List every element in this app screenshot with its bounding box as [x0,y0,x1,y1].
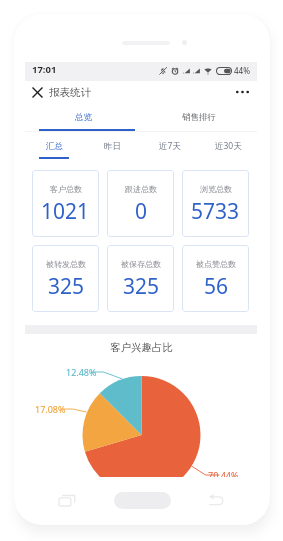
button[interactable]: 销售排行 [141,103,257,132]
button[interactable]: 被点赞总数 [182,245,249,312]
staticText: 17:01 [32,63,57,76]
button[interactable]: Recents [25,484,109,516]
button[interactable]: 客户总数 [32,170,99,237]
staticText: 44% [234,65,250,76]
button[interactable]: Close [25,81,49,103]
staticText: 汇总 [46,141,63,152]
staticText: 被转发总数 [46,259,86,269]
staticText: 1021 [41,197,90,226]
staticText: 70.44% [208,469,239,481]
staticText: 325 [48,272,85,301]
button[interactable]: 浏览总数 [182,170,249,237]
staticText: 0 [135,197,148,226]
staticText: 17.08% [35,403,66,415]
staticText: 近30天 [215,140,242,152]
staticText: 销售排行 [182,112,216,123]
button[interactable]: 被保存总数 [107,245,174,312]
staticText: 被点赞总数 [196,259,236,269]
staticText: 12.48% [66,366,97,378]
button[interactable]: 跟进总数 [107,170,174,237]
staticText: 被保存总数 [121,259,161,269]
staticText: 浏览总数 [200,184,232,194]
button[interactable]: More options [228,81,257,103]
button[interactable]: 汇总 [25,132,83,160]
button[interactable]: 总览 [25,103,141,132]
button[interactable]: 近30天 [199,132,257,160]
button[interactable]: 近7天 [141,132,199,160]
staticText: 5733 [191,197,240,226]
staticText: 近7天 [159,140,181,152]
staticText: 325 [123,272,160,301]
staticText: 报表统计 [49,86,91,99]
staticText: 客户总数 [50,184,82,194]
staticText: 总览 [75,112,92,123]
staticText: 客户兴趣占比 [110,341,173,354]
staticText: 56 [204,272,229,301]
staticText: 昨日 [104,141,121,152]
button[interactable]: Home [109,484,175,516]
button[interactable]: 昨日 [83,132,141,160]
staticText: 跟进总数 [125,184,157,194]
button[interactable]: 被转发总数 [32,245,99,312]
